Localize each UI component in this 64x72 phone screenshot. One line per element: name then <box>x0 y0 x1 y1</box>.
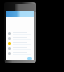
button[interactable] <box>6 31 34 36</box>
button[interactable] <box>6 41 34 46</box>
button[interactable]: Compose <box>27 57 32 60</box>
button[interactable] <box>6 46 34 51</box>
button[interactable] <box>6 51 34 56</box>
button[interactable] <box>6 11 34 17</box>
button[interactable] <box>6 36 34 41</box>
